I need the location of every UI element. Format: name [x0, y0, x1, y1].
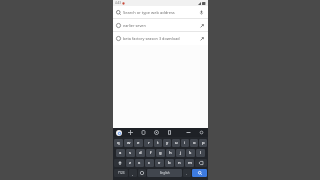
- button[interactable]: y: [163, 139, 171, 147]
- staticText: b: [168, 160, 171, 166]
- button[interactable]: Settings: [198, 129, 205, 136]
- staticText: ?123: [118, 171, 125, 175]
- button[interactable]: w: [124, 139, 133, 147]
- staticText: h: [169, 150, 172, 156]
- button[interactable]: j: [176, 149, 185, 157]
- staticText: t: [157, 140, 159, 146]
- button[interactable]: s: [126, 149, 135, 157]
- staticText: ,: [132, 171, 134, 176]
- button[interactable]: a: [116, 149, 125, 157]
- button[interactable]: Space: [147, 169, 182, 177]
- button[interactable]: Backspace: [195, 159, 207, 167]
- button[interactable]: f: [146, 149, 155, 157]
- button[interactable]: Themes: [127, 129, 134, 136]
- button[interactable]: d: [136, 149, 145, 157]
- button[interactable]: Search: [192, 169, 207, 177]
- button[interactable]: Edit query: [198, 35, 205, 42]
- staticText: y: [166, 140, 169, 146]
- staticText: o: [193, 140, 196, 146]
- button[interactable]: Google: [116, 130, 122, 136]
- staticText: s: [129, 150, 132, 156]
- staticText: Search or type web address: [123, 10, 197, 15]
- button[interactable]: Voice search: [198, 9, 205, 16]
- button[interactable]: i: [181, 139, 189, 147]
- staticText: n: [178, 160, 181, 166]
- button[interactable]: Clipboard: [140, 129, 147, 136]
- button[interactable]: m: [185, 159, 194, 167]
- button[interactable]: z: [126, 159, 134, 167]
- button[interactable]: g: [156, 149, 165, 157]
- staticText: d: [139, 150, 142, 156]
- button[interactable]: Stickers: [153, 129, 160, 136]
- button[interactable]: e: [134, 139, 143, 147]
- button[interactable]: Translate: [166, 129, 173, 136]
- button[interactable]: h: [166, 149, 175, 157]
- staticText: v: [158, 160, 161, 166]
- button[interactable]: q: [114, 139, 123, 147]
- button[interactable]: r: [144, 139, 153, 147]
- button[interactable]: earlier seven: [113, 19, 208, 32]
- staticText: r: [148, 140, 150, 146]
- button[interactable]: x: [135, 159, 144, 167]
- button[interactable]: Emoji: [138, 169, 146, 177]
- button[interactable]: c: [145, 159, 154, 167]
- button[interactable]: o: [190, 139, 198, 147]
- button[interactable]: More: [185, 129, 192, 136]
- button[interactable]: u: [172, 139, 180, 147]
- button[interactable]: p: [199, 139, 207, 147]
- staticText: earlier seven: [123, 23, 197, 28]
- staticText: l: [200, 150, 202, 156]
- staticText: j: [180, 150, 182, 156]
- staticText: z: [129, 160, 131, 166]
- staticText: g: [159, 150, 162, 156]
- staticText: English: [160, 171, 170, 175]
- button[interactable]: .: [183, 169, 191, 177]
- button[interactable]: Shift: [114, 159, 125, 167]
- button[interactable]: Edit query: [198, 22, 205, 29]
- button[interactable]: n: [175, 159, 184, 167]
- button[interactable]: Search or type web address: [113, 6, 208, 19]
- staticText: beta factory season 3 download: [123, 36, 197, 41]
- staticText: 4:43: [115, 1, 121, 5]
- staticText: u: [175, 140, 178, 146]
- button[interactable]: beta factory season 3 download: [113, 32, 208, 45]
- staticText: i: [184, 140, 186, 146]
- button[interactable]: ?123: [114, 169, 128, 177]
- staticText: k: [189, 150, 192, 156]
- staticText: q: [117, 140, 120, 146]
- staticText: c: [148, 160, 151, 166]
- staticText: p: [202, 140, 205, 146]
- staticText: x: [138, 160, 141, 166]
- button[interactable]: ,: [129, 169, 137, 177]
- staticText: .: [186, 171, 188, 176]
- staticText: m: [188, 160, 192, 166]
- button[interactable]: v: [155, 159, 164, 167]
- button[interactable]: b: [165, 159, 174, 167]
- button[interactable]: l: [196, 149, 205, 157]
- staticText: w: [127, 140, 131, 146]
- staticText: f: [150, 150, 152, 156]
- staticText: a: [119, 150, 122, 156]
- staticText: e: [137, 140, 140, 146]
- button[interactable]: t: [154, 139, 162, 147]
- button[interactable]: k: [186, 149, 195, 157]
